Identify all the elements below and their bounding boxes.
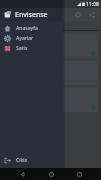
button[interactable]: Cihaz listesi — [3, 34, 98, 58]
button[interactable]: Anasayfa — [0, 23, 63, 33]
button[interactable]: Share — [87, 10, 97, 20]
staticText: Anasayfa — [16, 25, 38, 32]
button[interactable]: Satis — [0, 43, 63, 53]
staticText: Liste — [4, 22, 16, 29]
button[interactable]: Settings — [73, 10, 83, 20]
button[interactable]: Cikis — [0, 155, 63, 165]
staticText: 11:08 — [86, 1, 99, 8]
button[interactable]: Home — [45, 168, 57, 180]
staticText: Ayarlar — [16, 35, 34, 42]
button[interactable]: Saha cihazi — [3, 61, 98, 85]
staticText: Envisense — [15, 10, 48, 20]
staticText: Satis — [16, 45, 28, 52]
staticText: Cihaz listesi — [5, 36, 27, 41]
button[interactable]: Yeni alarm — [3, 88, 98, 112]
staticText: Cikis — [16, 157, 28, 164]
button[interactable]: Back — [16, 168, 28, 180]
button[interactable]: Ayarlar — [0, 33, 63, 43]
button[interactable]: Recents — [73, 168, 85, 180]
